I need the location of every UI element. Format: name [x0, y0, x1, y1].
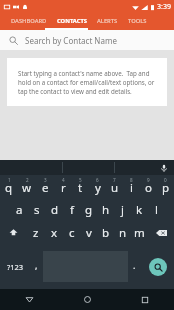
staticText: b: [102, 225, 110, 241]
button[interactable]: l: [148, 198, 165, 221]
staticText: t: [78, 180, 83, 196]
staticText: Start typing a contact's name above. Tap…: [18, 69, 156, 96]
staticText: k: [136, 202, 143, 218]
button[interactable]: h: [97, 198, 114, 221]
staticText: i: [130, 180, 133, 196]
button[interactable]: Search: [149, 258, 167, 276]
staticText: Search by Contact Name: [25, 35, 117, 46]
button[interactable]: Shift: [0, 221, 27, 244]
button[interactable]: x: [45, 221, 63, 244]
staticText: ,: [35, 259, 38, 271]
staticText: y: [95, 180, 101, 196]
button[interactable]: Search by Contact Name: [0, 30, 174, 50]
button[interactable]: 5: [72, 175, 89, 198]
button[interactable]: c: [63, 221, 80, 244]
button[interactable]: .: [128, 244, 141, 289]
button[interactable]: k: [131, 198, 148, 221]
staticText: 0: [164, 177, 167, 183]
button[interactable]: Home: [58, 289, 116, 310]
staticText: n: [119, 225, 127, 241]
button[interactable]: Voice input: [159, 163, 169, 173]
staticText: h: [102, 202, 110, 218]
staticText: l: [155, 202, 158, 218]
button[interactable]: ,: [30, 244, 43, 289]
button[interactable]: TOOLS: [123, 13, 152, 28]
staticText: x: [51, 225, 58, 241]
staticText: DASHBOARD: [11, 17, 47, 25]
staticText: d: [51, 202, 59, 218]
button[interactable]: Delete: [148, 221, 174, 244]
staticText: 4: [62, 177, 65, 183]
button[interactable]: Recents: [116, 289, 174, 310]
button[interactable]: 2: [18, 175, 36, 198]
staticText: o: [145, 180, 152, 196]
staticText: .: [133, 259, 136, 271]
staticText: e: [42, 180, 49, 196]
staticText: m: [134, 225, 145, 241]
staticText: q: [5, 180, 13, 196]
staticText: p: [162, 180, 170, 196]
staticText: a: [16, 202, 23, 218]
staticText: f: [70, 202, 74, 218]
staticText: 8: [130, 177, 133, 183]
button[interactable]: 6: [89, 175, 106, 198]
button[interactable]: ?123: [0, 244, 30, 289]
staticText: s: [34, 202, 40, 218]
button[interactable]: d: [46, 198, 63, 221]
button[interactable]: g: [80, 198, 97, 221]
staticText: 9: [147, 177, 150, 183]
staticText: u: [111, 180, 119, 196]
staticText: c: [69, 225, 75, 241]
button[interactable]: 3: [36, 175, 54, 198]
button[interactable]: 8: [123, 175, 140, 198]
staticText: ALERTS: [97, 17, 118, 25]
staticText: r: [61, 180, 66, 196]
button[interactable]: f: [63, 198, 80, 221]
button[interactable]: j: [114, 198, 131, 221]
button[interactable]: a: [10, 198, 28, 221]
button[interactable]: 0: [157, 175, 174, 198]
button[interactable]: m: [131, 221, 148, 244]
staticText: w: [22, 180, 32, 196]
staticText: 3:39: [157, 2, 171, 12]
button[interactable]: 4: [54, 175, 72, 198]
staticText: j: [121, 202, 124, 218]
staticText: 3: [44, 177, 47, 183]
button[interactable]: Back: [0, 289, 58, 310]
staticText: z: [33, 225, 39, 241]
button[interactable]: 9: [140, 175, 157, 198]
staticText: ?123: [7, 262, 24, 272]
staticText: 1: [8, 177, 11, 183]
staticText: 2: [26, 177, 29, 183]
staticText: 6: [96, 177, 99, 183]
staticText: 5: [79, 177, 82, 183]
button[interactable]: DASHBOARD: [6, 13, 52, 28]
staticText: g: [85, 202, 93, 218]
button[interactable]: CONTACTS: [52, 13, 92, 28]
button[interactable]: 7: [106, 175, 123, 198]
button[interactable]: z: [27, 221, 45, 244]
staticText: v: [86, 225, 92, 241]
button[interactable]: b: [97, 221, 114, 244]
button[interactable]: ALERTS: [92, 13, 123, 28]
button[interactable]: n: [114, 221, 131, 244]
staticText: 7: [113, 177, 116, 183]
button[interactable]: v: [80, 221, 97, 244]
button[interactable]: s: [28, 198, 46, 221]
staticText: TOOLS: [128, 17, 147, 25]
staticText: CONTACTS: [57, 17, 87, 25]
button[interactable]: 1: [0, 175, 18, 198]
